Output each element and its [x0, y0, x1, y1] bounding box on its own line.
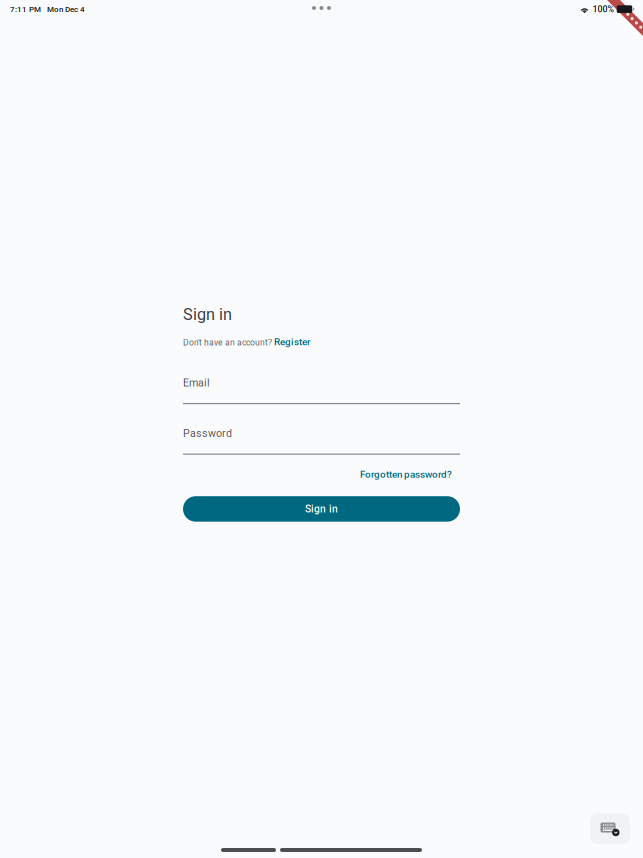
- staticText: Sign in: [183, 305, 232, 324]
- button[interactable]: Hide keyboard: [590, 813, 630, 844]
- button[interactable]: Sign in: [183, 496, 460, 522]
- staticText: Email: [183, 377, 210, 389]
- staticText: Password: [183, 427, 232, 440]
- staticText: Register: [274, 336, 310, 348]
- staticText: 100%: [592, 4, 613, 14]
- staticText: Sign in: [305, 503, 338, 515]
- button[interactable]: Register: [274, 336, 310, 348]
- staticText: 7:11 PM Mon Dec 4: [10, 4, 85, 14]
- button[interactable]: Forgotten password?: [360, 469, 452, 480]
- staticText: Forgotten password?: [360, 469, 452, 480]
- staticText: Don't have an account?: [183, 338, 274, 348]
